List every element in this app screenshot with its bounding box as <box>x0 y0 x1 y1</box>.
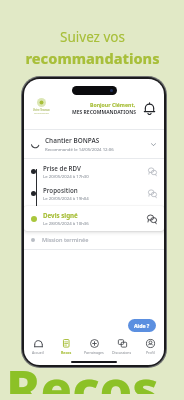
button[interactable]: Discussions <box>108 336 136 358</box>
button[interactable]: Aide ? <box>128 319 156 332</box>
button[interactable]: Parrainages <box>80 336 108 358</box>
staticText: Discussions <box>112 350 132 355</box>
staticText: Devis signé <box>43 211 78 219</box>
staticText: recommandations <box>25 48 160 68</box>
staticText: Accueil <box>32 350 44 355</box>
staticText: Suivez vos <box>60 28 125 46</box>
staticText: Profil <box>146 350 155 355</box>
other: Profil <box>146 339 155 348</box>
button[interactable]: Proposition <box>24 185 164 202</box>
button[interactable]: Notifications <box>141 100 157 116</box>
staticText: Le 20/05/2024 à 17h30 <box>43 173 89 179</box>
button[interactable]: Chantier BONPAS <box>24 130 164 158</box>
button[interactable]: Mission terminée <box>24 231 164 249</box>
staticText: Le 20/05/2024 à 19h04 <box>43 195 89 201</box>
staticText: recommandés <box>34 112 49 115</box>
staticText: Recommandé le 14/05/2024 12:06 <box>45 146 114 152</box>
button[interactable]: Recos <box>52 336 80 358</box>
staticText: Bonjour Clément, <box>90 101 136 108</box>
staticText: Proposition <box>43 186 78 194</box>
staticText: Aide ? <box>134 322 150 329</box>
staticText: Recos <box>6 352 159 394</box>
staticText: Mission terminée <box>42 236 89 244</box>
staticText: Prise de RDV <box>43 164 81 172</box>
button[interactable]: Logo <box>31 98 51 118</box>
other: Recos <box>62 339 71 348</box>
staticText: Votre Travaux <box>33 108 50 112</box>
staticText: Parrainages <box>84 350 104 355</box>
button[interactable]: Profil <box>136 336 164 358</box>
other: Discussions <box>118 339 127 348</box>
button[interactable]: Prise de RDV <box>24 163 164 180</box>
other: Parrainages <box>90 339 99 348</box>
staticText: MES RECOMMANDATIONS <box>72 109 136 116</box>
button[interactable]: Accueil <box>24 336 52 358</box>
button[interactable]: Devis signé <box>24 206 164 231</box>
staticText: Recos <box>61 350 72 355</box>
staticText: Le 28/05/2024 à 10h36 <box>43 220 89 226</box>
staticText: Chantier BONPAS <box>45 136 100 145</box>
other: Accueil <box>34 339 43 348</box>
